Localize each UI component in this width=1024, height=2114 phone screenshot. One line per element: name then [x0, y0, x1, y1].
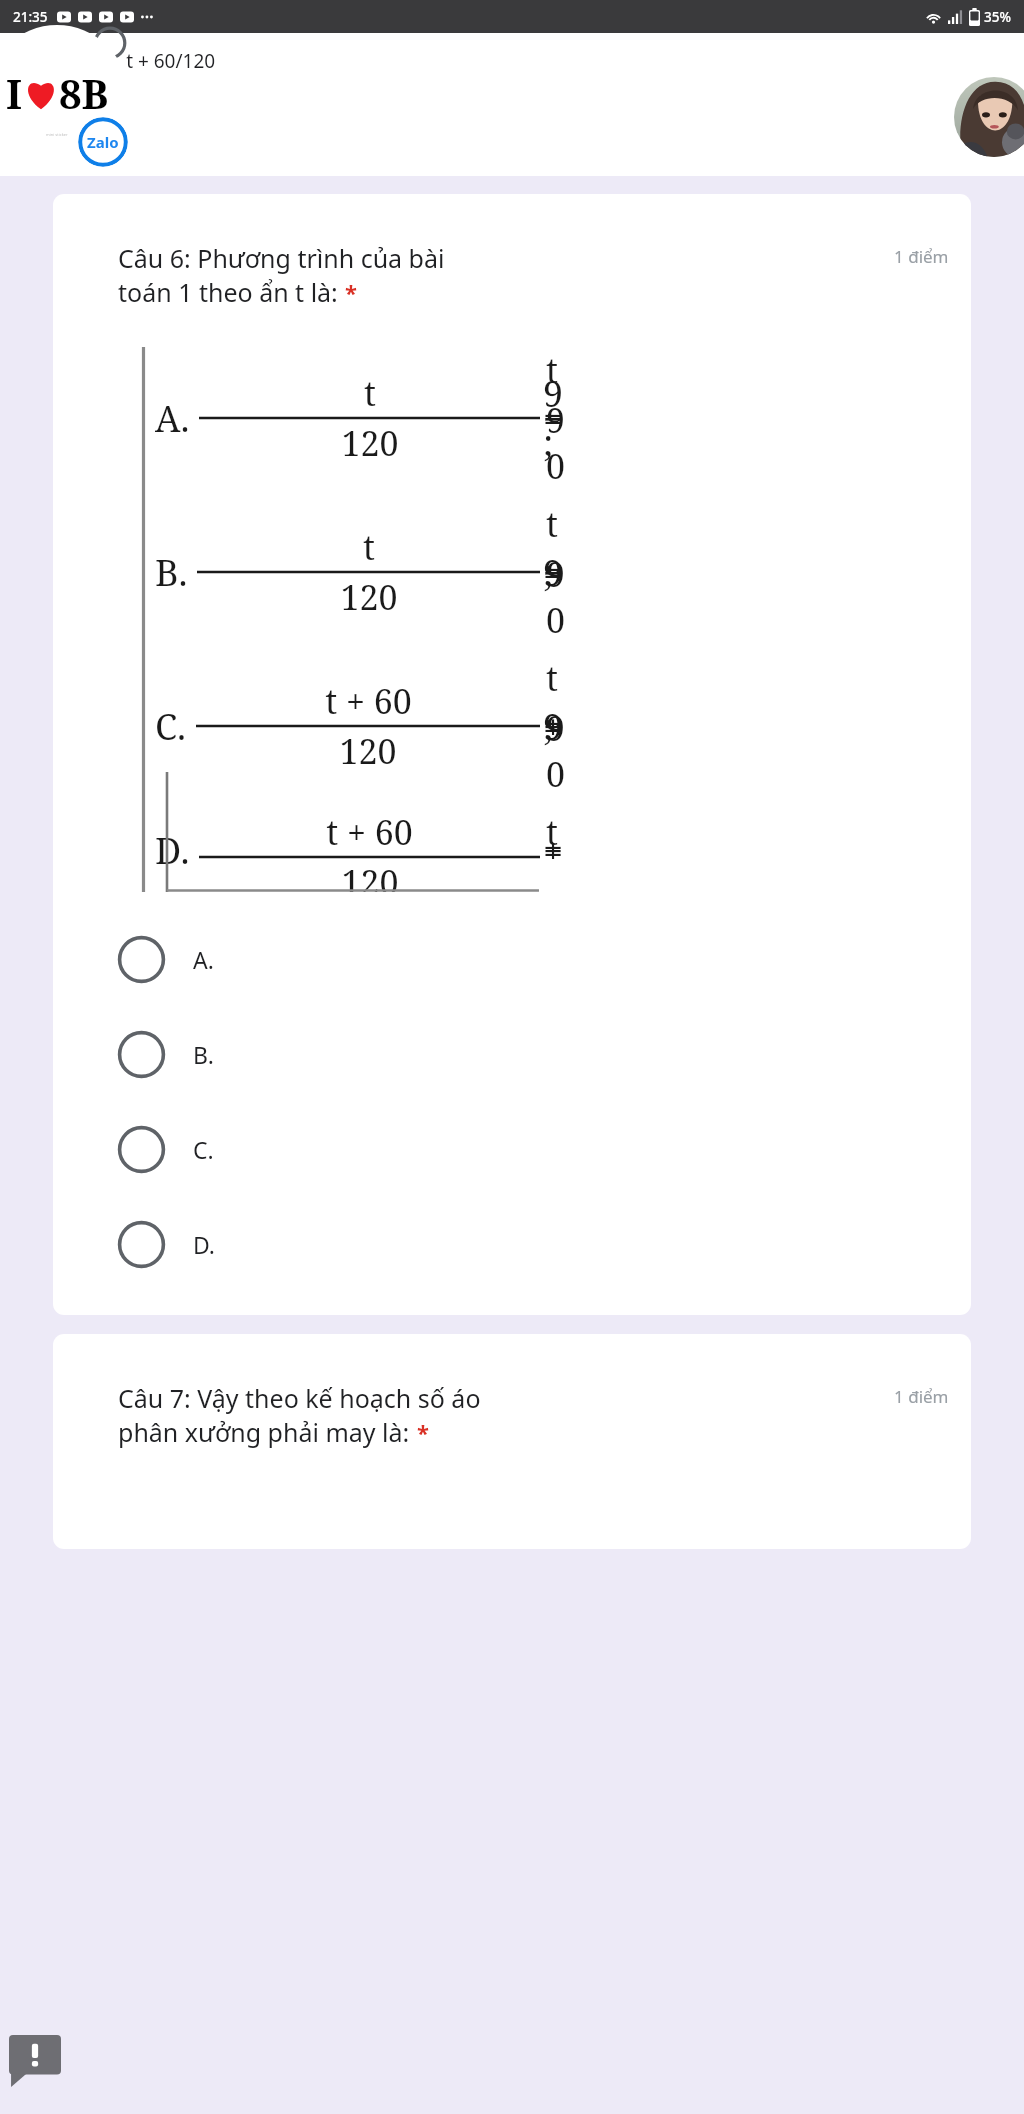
staticText: Câu 7: Vậy theo kế hoạch số áo — [118, 1381, 481, 1415]
button[interactable]: Profile photo — [954, 77, 1024, 157]
staticText: Câu 6: Phương trình của bài — [118, 241, 445, 275]
staticText: B. — [155, 548, 188, 597]
staticText: phân xưởng phải may là: — [118, 1415, 410, 1449]
staticText: D. — [155, 826, 190, 875]
staticText: 120 — [341, 420, 399, 466]
staticText: 120 — [341, 859, 399, 892]
staticText: toán 1 theo ẩn t là: — [118, 275, 338, 309]
staticText: C. — [155, 702, 187, 751]
staticText: Zalo — [87, 132, 119, 152]
staticText: B. — [193, 1039, 214, 1070]
button[interactable]: Report a problem — [9, 2035, 61, 2087]
staticText: 1 điểm — [894, 245, 949, 268]
staticText: * — [417, 1417, 429, 1447]
staticText: A. — [193, 944, 214, 975]
staticText: 35% — [984, 8, 1011, 26]
staticText: t — [364, 370, 376, 416]
staticText: t + 60 — [326, 809, 413, 855]
staticText: D. t + 60/120 — [103, 48, 216, 74]
staticText: t — [363, 524, 375, 570]
staticText: 1 điểm — [894, 1385, 949, 1408]
staticText: mini sticker — [46, 132, 68, 137]
button[interactable]: Câu 7: Vậy theo kế hoạch số áo — [53, 1334, 971, 1549]
staticText: I — [6, 66, 23, 120]
button[interactable]: C. — [53, 1119, 971, 1180]
staticText: 8B — [59, 66, 109, 120]
button[interactable]: Zalo chat bubble — [0, 25, 136, 175]
button[interactable]: Câu 6: Phương trình của bài — [53, 194, 971, 1315]
staticText: * — [345, 277, 357, 307]
button[interactable]: A. — [53, 929, 971, 990]
staticText: 120 — [340, 574, 398, 620]
staticText: A. — [155, 394, 190, 443]
staticText: D. — [193, 1229, 216, 1260]
staticText: 21:35 — [13, 8, 48, 26]
staticText: t + 60 — [325, 678, 412, 724]
button[interactable]: B. — [53, 1024, 971, 1085]
staticText: C. — [193, 1134, 214, 1165]
staticText: 120 — [339, 728, 397, 774]
button[interactable]: D. — [53, 1214, 971, 1275]
